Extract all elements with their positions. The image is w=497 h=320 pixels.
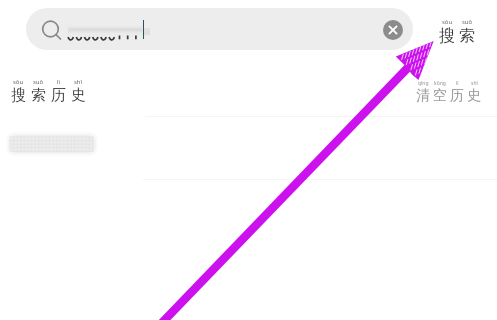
button[interactable]: sōu: [439, 18, 475, 46]
staticText: 索: [459, 26, 475, 46]
staticText: qīng: [418, 80, 429, 87]
staticText: suǒ: [462, 18, 473, 26]
staticText: 空: [433, 87, 447, 105]
staticText: kōng: [434, 80, 446, 87]
staticText: suǒ: [33, 78, 44, 86]
button[interactable]: [4, 129, 100, 159]
button[interactable]: Search input: [26, 8, 413, 50]
other: Search: [41, 17, 65, 41]
staticText: 索: [31, 86, 46, 105]
staticText: shǐ: [471, 80, 478, 87]
staticText: 历: [450, 87, 464, 105]
staticText: 历: [51, 86, 66, 105]
button[interactable]: Clear search text: [383, 20, 403, 40]
staticText: 清: [416, 87, 430, 105]
staticText: 搜: [439, 26, 455, 46]
staticText: 史: [71, 86, 86, 105]
staticText: 搜: [11, 86, 26, 105]
staticText: sōu: [13, 78, 24, 86]
staticText: lì: [456, 80, 459, 87]
staticText: shǐ: [74, 78, 83, 86]
button[interactable]: qīng: [416, 80, 481, 105]
staticText: sōu: [442, 18, 453, 26]
staticText: lì: [57, 78, 61, 86]
staticText: 史: [467, 87, 481, 105]
